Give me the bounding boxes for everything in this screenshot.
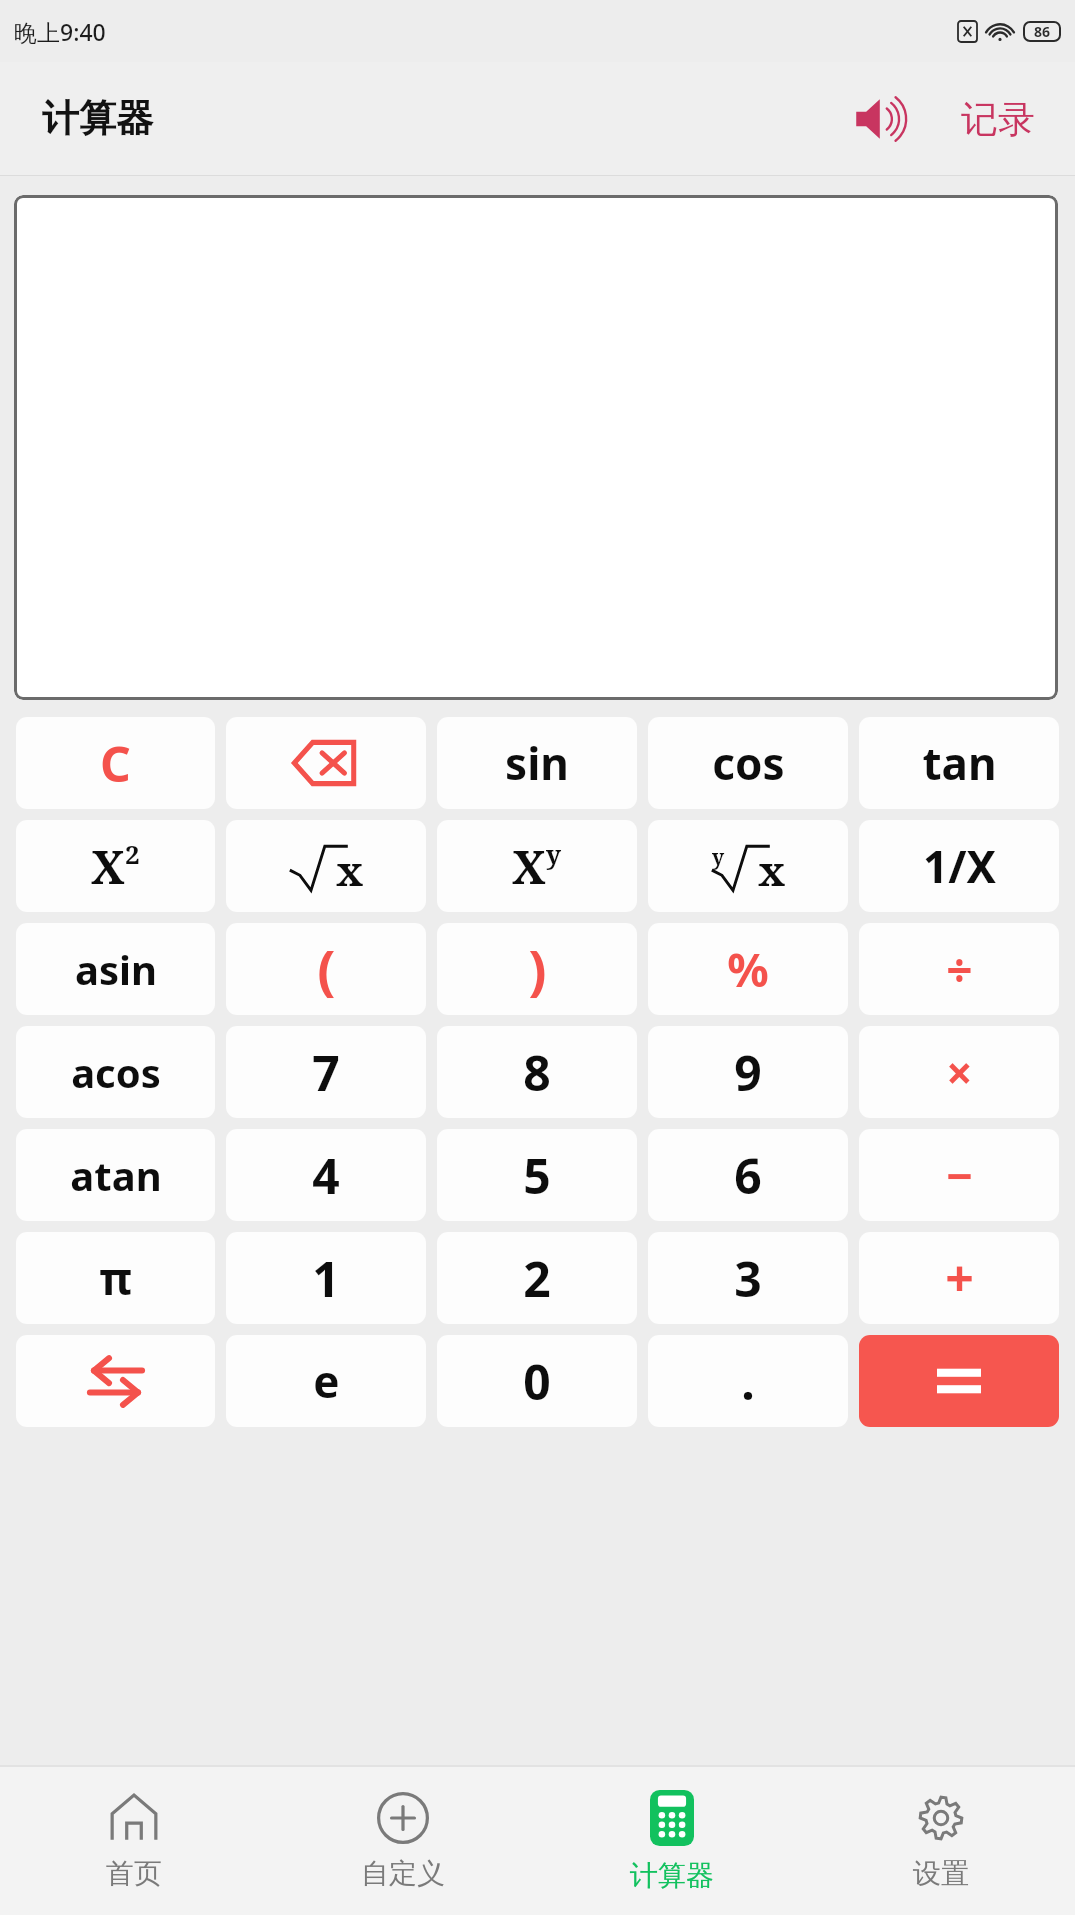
button[interactable]: C: [16, 717, 215, 809]
button[interactable]: 7: [226, 1026, 426, 1118]
button[interactable]: .: [648, 1335, 848, 1427]
button[interactable]: atan: [16, 1129, 215, 1221]
staticText: C: [100, 731, 131, 796]
button[interactable]: 自定义: [268, 1767, 537, 1915]
button[interactable]: (: [226, 923, 426, 1015]
button[interactable]: asin: [16, 923, 215, 1015]
staticText: 1/X: [923, 836, 996, 896]
staticText: atan: [70, 1148, 162, 1202]
button[interactable]: 记录: [955, 86, 1041, 153]
button[interactable]: 1/X: [859, 820, 1059, 912]
staticText: sin: [505, 733, 569, 793]
staticText: 首页: [106, 1856, 162, 1891]
staticText: X: [512, 835, 546, 898]
staticText: 设置: [913, 1856, 969, 1891]
staticText: acos: [71, 1045, 161, 1099]
staticText: 晚上9:40: [14, 16, 106, 47]
button[interactable]: 6: [648, 1129, 848, 1221]
staticText: y: [546, 836, 562, 871]
button[interactable]: [859, 1335, 1059, 1427]
staticText: x: [336, 841, 364, 898]
button[interactable]: Swap: [16, 1335, 215, 1427]
staticText: 9: [734, 1040, 762, 1105]
staticText: 5: [523, 1143, 551, 1208]
staticText: tan: [922, 733, 997, 793]
staticText: 2: [523, 1246, 551, 1311]
button[interactable]: sin: [437, 717, 637, 809]
button[interactable]: 8: [437, 1026, 637, 1118]
staticText: 1: [312, 1246, 340, 1311]
staticText: 4: [312, 1143, 340, 1208]
staticText: (: [317, 932, 336, 1006]
staticText: e: [313, 1351, 340, 1411]
button[interactable]: ×: [859, 1026, 1059, 1118]
button[interactable]: X: [437, 820, 637, 912]
staticText: 计算器: [42, 95, 153, 142]
button[interactable]: 5: [437, 1129, 637, 1221]
staticText: %: [727, 938, 769, 1001]
staticText: .: [741, 1349, 755, 1414]
staticText: 6: [734, 1143, 762, 1208]
staticText: π: [99, 1248, 132, 1308]
staticText: cos: [712, 733, 785, 793]
staticText: ): [528, 932, 547, 1006]
button[interactable]: 4: [226, 1129, 426, 1221]
staticText: +: [945, 1244, 974, 1312]
staticText: 0: [523, 1349, 551, 1414]
staticText: 计算器: [630, 1858, 714, 1893]
staticText: 自定义: [361, 1856, 445, 1891]
staticText: 7: [312, 1040, 340, 1105]
staticText: 2: [125, 836, 140, 871]
button[interactable]: x: [226, 820, 426, 912]
button[interactable]: π: [16, 1232, 215, 1324]
staticText: 8: [523, 1040, 551, 1105]
button[interactable]: −: [859, 1129, 1059, 1221]
staticText: X: [91, 835, 125, 898]
button[interactable]: Sound: [847, 80, 925, 158]
button[interactable]: cos: [648, 717, 848, 809]
staticText: asin: [75, 942, 157, 996]
staticText: ×: [946, 1041, 973, 1104]
button[interactable]: 设置: [806, 1767, 1075, 1915]
button[interactable]: 3: [648, 1232, 848, 1324]
button[interactable]: %: [648, 923, 848, 1015]
button[interactable]: y: [648, 820, 848, 912]
staticText: ÷: [946, 938, 973, 1001]
button[interactable]: 1: [226, 1232, 426, 1324]
button[interactable]: ): [437, 923, 637, 1015]
button[interactable]: +: [859, 1232, 1059, 1324]
button[interactable]: X: [16, 820, 215, 912]
button[interactable]: acos: [16, 1026, 215, 1118]
staticText: 86: [1034, 22, 1051, 41]
staticText: 记录: [961, 96, 1035, 143]
button[interactable]: e: [226, 1335, 426, 1427]
staticText: −: [946, 1144, 973, 1207]
button[interactable]: 9: [648, 1026, 848, 1118]
button[interactable]: Backspace: [226, 717, 426, 809]
button[interactable]: 计算器: [537, 1767, 806, 1915]
staticText: x: [758, 841, 786, 898]
button[interactable]: 首页: [0, 1767, 268, 1915]
button[interactable]: 0: [437, 1335, 637, 1427]
staticText: y: [712, 843, 725, 872]
staticText: 3: [734, 1246, 762, 1311]
button[interactable]: 2: [437, 1232, 637, 1324]
button[interactable]: tan: [859, 717, 1059, 809]
button[interactable]: ÷: [859, 923, 1059, 1015]
